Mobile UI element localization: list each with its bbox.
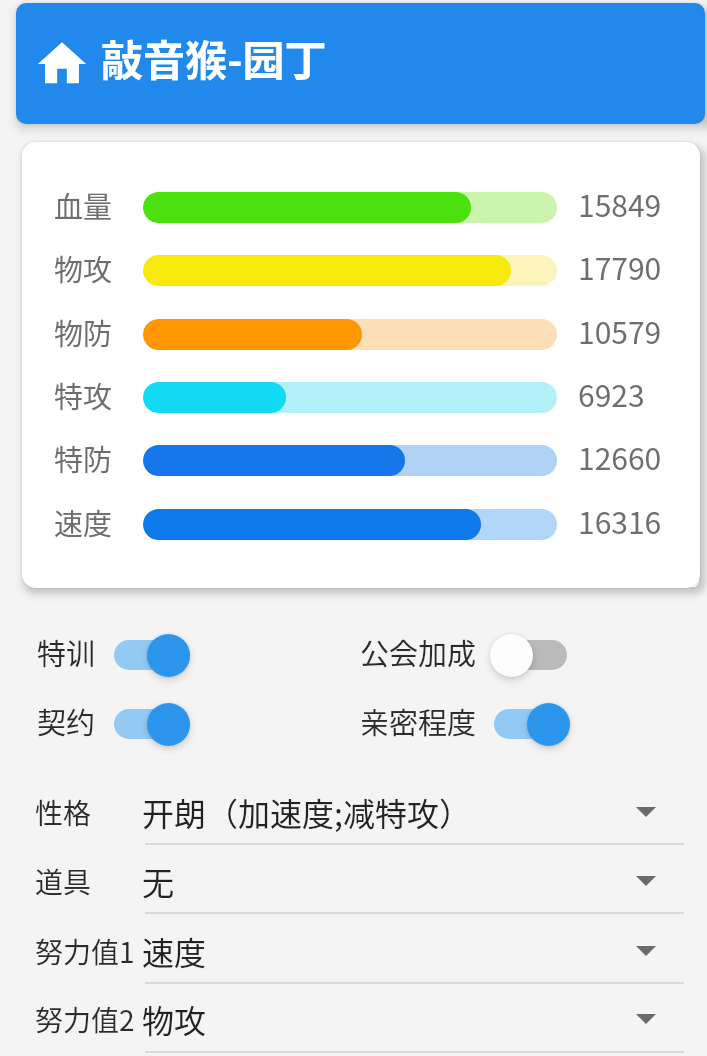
button[interactable] bbox=[491, 640, 567, 670]
staticText: 公会加成 bbox=[360, 631, 477, 673]
staticText: 16316 bbox=[578, 499, 662, 542]
staticText: 速度 bbox=[54, 501, 113, 543]
staticText: 10579 bbox=[578, 309, 662, 352]
staticText: 血量 bbox=[54, 184, 113, 226]
staticText: 17790 bbox=[578, 245, 662, 288]
button[interactable]: 物攻 bbox=[142, 993, 622, 1045]
button[interactable] bbox=[494, 709, 570, 739]
button[interactable]: 敲音猴-园丁 bbox=[16, 3, 705, 124]
staticText: 速度 bbox=[142, 928, 207, 974]
button[interactable]: 无 bbox=[142, 855, 622, 907]
staticText: 敲音猴-园丁 bbox=[101, 27, 327, 88]
staticText: 努力值2 bbox=[35, 999, 135, 1040]
staticText: 12660 bbox=[578, 435, 662, 478]
staticText: 契约 bbox=[37, 700, 96, 742]
staticText: 道具 bbox=[35, 861, 92, 902]
staticText: 物攻 bbox=[142, 996, 207, 1042]
button[interactable] bbox=[114, 709, 190, 739]
staticText: 性格 bbox=[35, 792, 92, 833]
staticText: 15849 bbox=[578, 182, 662, 225]
staticText: 开朗（加速度;减特攻） bbox=[142, 789, 471, 835]
staticText: 物攻 bbox=[54, 247, 113, 289]
button[interactable] bbox=[114, 640, 190, 670]
button[interactable]: 开朗（加速度;减特攻） bbox=[142, 786, 622, 838]
button[interactable]: 速度 bbox=[142, 925, 622, 977]
staticText: 6923 bbox=[578, 372, 645, 415]
staticText: 物防 bbox=[54, 311, 113, 353]
staticText: 亲密程度 bbox=[360, 700, 477, 742]
staticText: 特防 bbox=[54, 437, 113, 479]
staticText: 努力值1 bbox=[35, 931, 135, 972]
staticText: 特训 bbox=[37, 631, 96, 673]
staticText: 特攻 bbox=[54, 374, 113, 416]
staticText: 无 bbox=[142, 858, 175, 904]
